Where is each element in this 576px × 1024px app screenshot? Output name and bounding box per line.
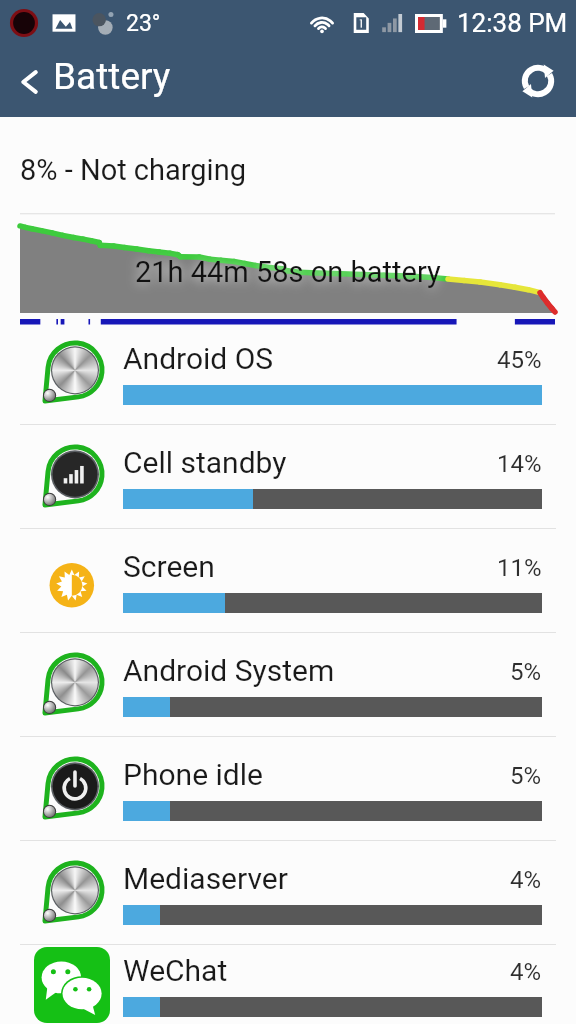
staticText: 11% xyxy=(497,554,542,582)
staticText: 4% xyxy=(510,958,542,986)
staticText: Mediaserver xyxy=(123,861,288,896)
button[interactable]: Cell standby xyxy=(0,425,576,528)
staticText: 12:38 PM xyxy=(457,8,568,38)
button[interactable]: Mediaserver xyxy=(0,841,576,944)
staticText: Android OS xyxy=(123,341,274,376)
staticText: 45% xyxy=(497,346,542,374)
staticText: 21h 44m 58s on battery xyxy=(135,255,441,289)
button[interactable]: Battery xyxy=(0,50,185,113)
staticText: 8% - Not charging xyxy=(20,153,246,187)
staticText: WeChat xyxy=(123,953,228,988)
button[interactable]: Screen xyxy=(0,529,576,632)
button[interactable]: Refresh xyxy=(508,51,568,111)
staticText: 23° xyxy=(126,10,161,37)
button[interactable]: Android OS xyxy=(0,321,576,424)
staticText: 14% xyxy=(497,450,542,478)
staticText: 5% xyxy=(510,658,542,686)
button[interactable]: WeChat xyxy=(0,945,576,1024)
staticText: Phone idle xyxy=(123,757,263,792)
button[interactable]: Android System xyxy=(0,633,576,736)
staticText: Android System xyxy=(123,653,335,688)
staticText: 5% xyxy=(510,762,542,790)
staticText: Screen xyxy=(123,549,215,584)
button[interactable]: Phone idle xyxy=(0,737,576,840)
staticText: Cell standby xyxy=(123,445,287,480)
staticText: Battery xyxy=(53,55,171,98)
staticText: 4% xyxy=(510,866,542,894)
